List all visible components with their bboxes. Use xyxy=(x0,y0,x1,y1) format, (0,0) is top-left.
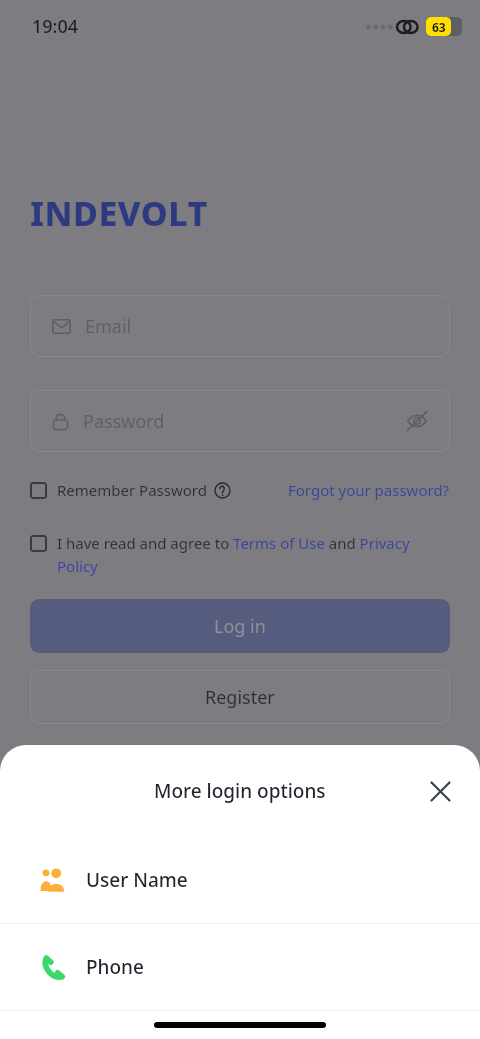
staticText: More login options xyxy=(154,778,326,804)
staticText: Register xyxy=(205,685,275,710)
button[interactable]: Email xyxy=(30,295,450,357)
staticText: User Name xyxy=(86,867,188,893)
button[interactable]: Log in xyxy=(30,599,450,653)
button[interactable] xyxy=(30,535,47,552)
staticText: 19:04 xyxy=(32,14,79,39)
button[interactable]: Show password xyxy=(402,406,432,436)
button[interactable]: Phone xyxy=(0,924,480,1010)
button[interactable]: Password xyxy=(30,390,450,452)
staticText: INDEVOLT xyxy=(30,190,208,236)
staticText: Forgot your password? xyxy=(288,480,450,500)
button[interactable]: User Name xyxy=(0,837,480,923)
staticText: Log in xyxy=(214,614,266,639)
staticText: Phone xyxy=(86,954,144,980)
staticText: I have read and agree to Terms of Use an… xyxy=(57,533,452,577)
staticText: 63 xyxy=(432,19,446,35)
staticText: Remember Password xyxy=(57,480,207,500)
staticText: Password xyxy=(83,409,165,434)
button[interactable]: Register xyxy=(30,670,450,724)
staticText: Email xyxy=(85,314,132,339)
button[interactable]: Close xyxy=(420,771,460,811)
button[interactable]: Forgot your password? xyxy=(288,480,450,500)
button[interactable]: Remember Password xyxy=(30,480,231,500)
